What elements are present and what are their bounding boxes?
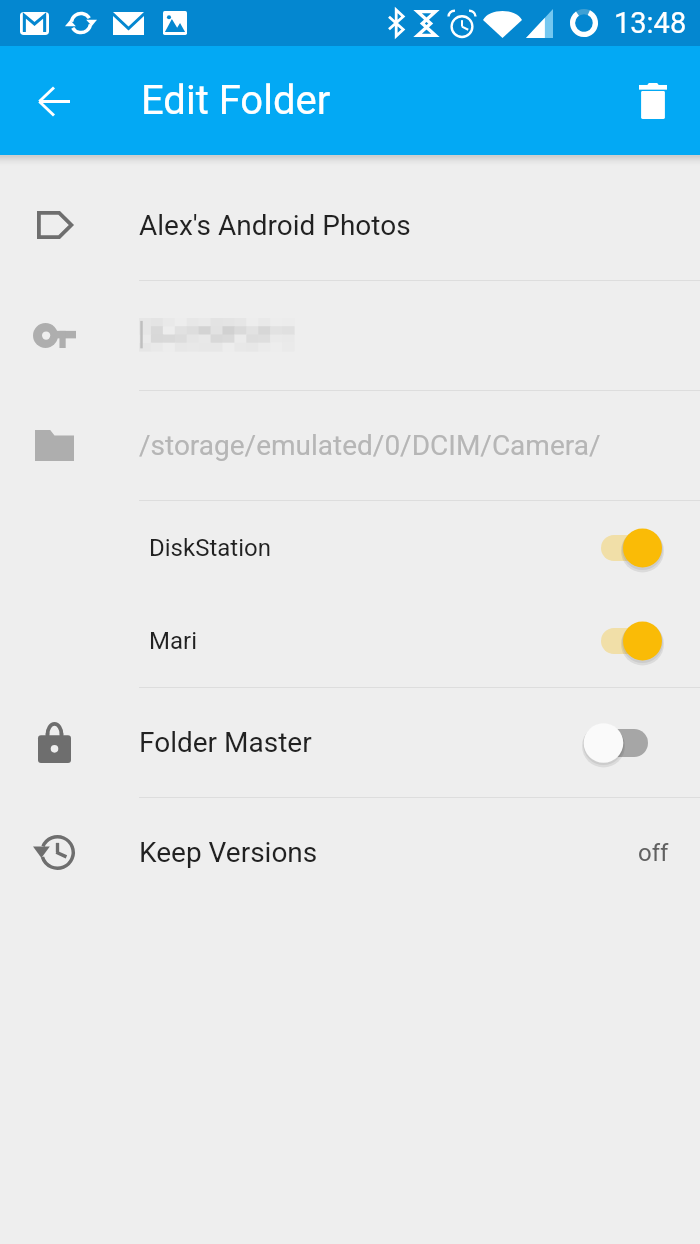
button[interactable] bbox=[0, 281, 700, 390]
staticText: Keep Versions bbox=[139, 836, 318, 869]
button[interactable]: DiskStation bbox=[0, 501, 700, 594]
button[interactable]: Delete folder bbox=[622, 70, 684, 132]
staticText: Folder Master bbox=[139, 726, 312, 759]
button[interactable]: Keep Versions bbox=[0, 798, 700, 907]
staticText: /storage/emulated/0/DCIM/Camera/ bbox=[139, 429, 601, 462]
staticText: off bbox=[638, 839, 669, 867]
button[interactable]: Mari bbox=[0, 594, 700, 687]
button[interactable]: Folder Master bbox=[0, 688, 700, 797]
staticText: Alex's Android Photos bbox=[139, 209, 411, 242]
staticText: 13:48 bbox=[614, 6, 687, 40]
button[interactable]: /storage/emulated/0/DCIM/Camera/ bbox=[0, 391, 700, 500]
staticText: Mari bbox=[149, 627, 197, 655]
button[interactable]: Back bbox=[23, 70, 85, 132]
staticText: DiskStation bbox=[149, 534, 271, 562]
staticText: Edit Folder bbox=[141, 77, 331, 124]
button[interactable]: Alex's Android Photos bbox=[0, 170, 700, 280]
